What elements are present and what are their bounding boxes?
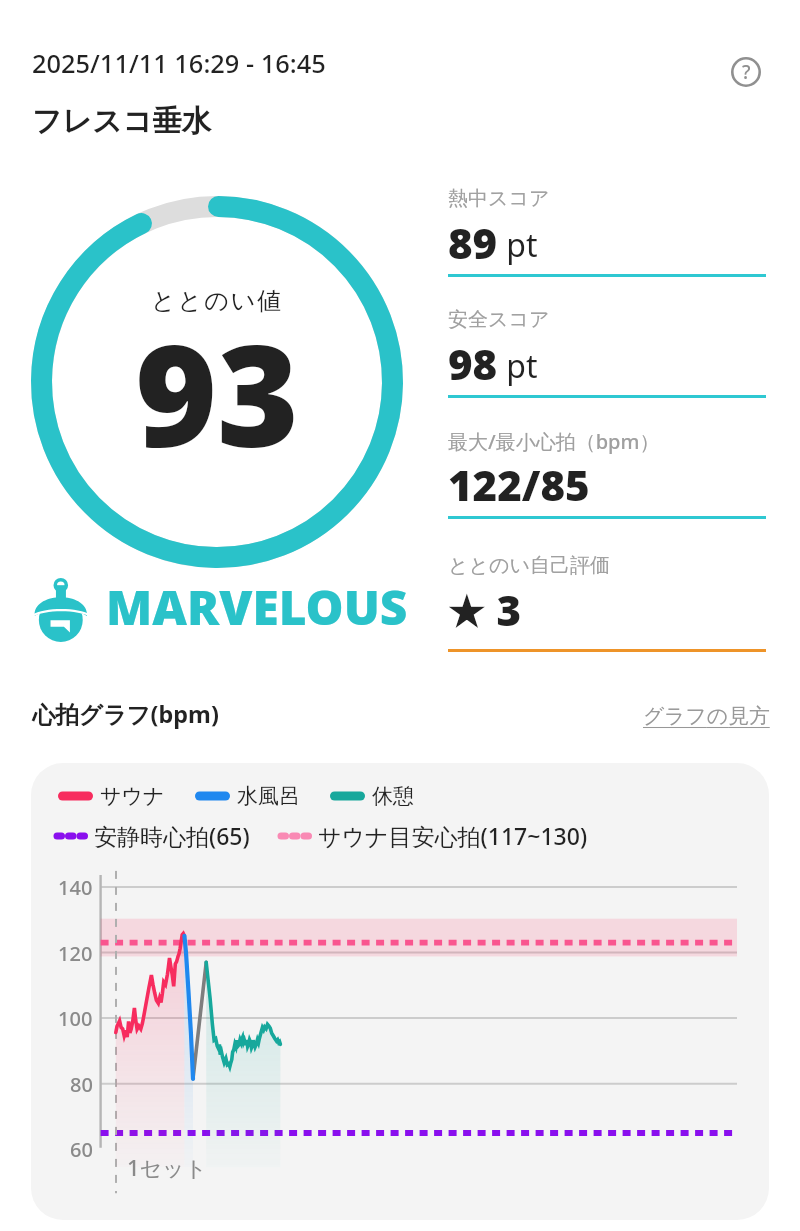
- staticText: pt: [498, 344, 538, 388]
- staticText: グラフの見方: [643, 703, 770, 729]
- staticText: 心拍グラフ(bpm): [32, 698, 219, 730]
- staticText: 89: [448, 214, 498, 271]
- staticText: フレスコ垂水: [32, 103, 212, 140]
- staticText: 98: [448, 335, 498, 392]
- staticText: ととのい自己評価: [448, 553, 610, 578]
- staticText: ?: [742, 59, 751, 85]
- staticText: サウナ: [100, 783, 165, 809]
- staticText: 93: [135, 297, 300, 488]
- staticText: 60: [70, 1136, 93, 1163]
- staticText: 水風呂: [237, 783, 300, 809]
- button[interactable]: Help: [716, 42, 776, 102]
- staticText: 安静時心拍(65): [94, 820, 250, 851]
- staticText: 120: [58, 940, 93, 967]
- staticText: 2025/11/11 16:29 - 16:45: [32, 46, 326, 81]
- staticText: ととのい値: [151, 286, 284, 316]
- staticText: 最大/最小心拍（bpm）: [448, 428, 660, 455]
- button[interactable]: グラフの見方: [643, 703, 770, 729]
- staticText: 安全スコア: [448, 307, 550, 332]
- staticText: サウナ目安心拍(117~130): [318, 820, 588, 851]
- staticText: 122/85: [448, 456, 590, 513]
- staticText: MARVELOUS: [106, 574, 408, 639]
- staticText: 140: [58, 874, 93, 901]
- staticText: 1セット: [127, 1152, 208, 1182]
- staticText: pt: [498, 223, 538, 267]
- staticText: 熱中スコア: [448, 186, 550, 211]
- staticText: 100: [58, 1005, 93, 1032]
- staticText: 休憩: [372, 783, 414, 809]
- staticText: ★ 3: [448, 581, 522, 638]
- staticText: 80: [70, 1071, 93, 1098]
